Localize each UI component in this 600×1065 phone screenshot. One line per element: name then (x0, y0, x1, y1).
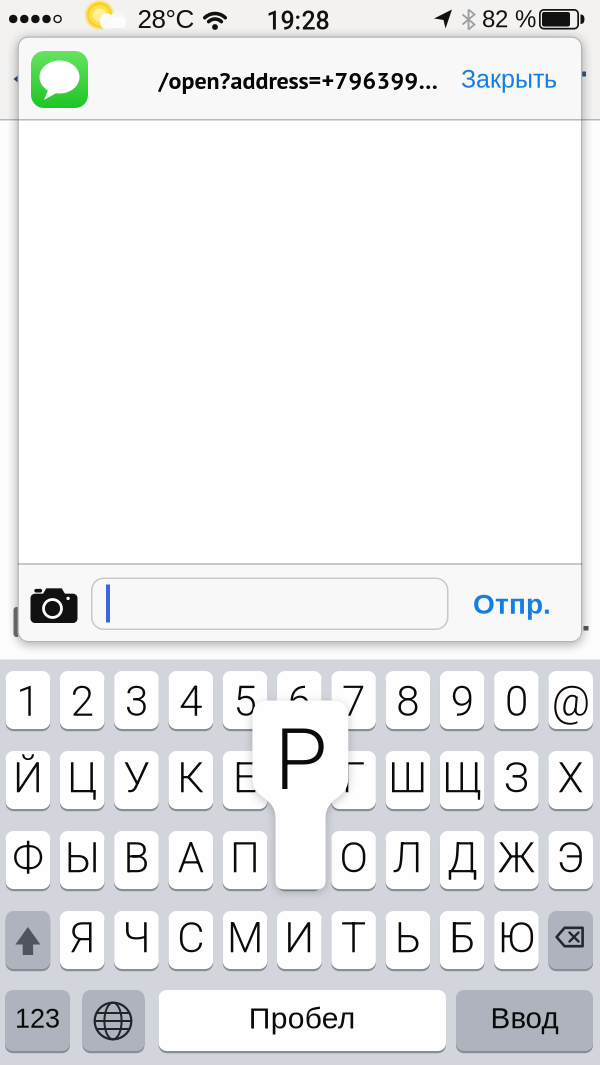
staticText: 19:28 (266, 6, 329, 36)
button[interactable]: П (223, 831, 267, 889)
button[interactable]: З (494, 751, 539, 809)
staticText: /open?address=+796399… (158, 64, 437, 96)
button[interactable]: 2 (60, 671, 104, 729)
button[interactable]: С (168, 911, 213, 969)
staticText: Ш (388, 753, 427, 803)
button[interactable]: А (168, 831, 213, 889)
staticText: К (177, 753, 204, 803)
button[interactable]: Х (548, 751, 593, 809)
staticText: 7 (342, 677, 365, 726)
staticText: 1 (16, 677, 39, 726)
button[interactable]: О (331, 831, 376, 889)
staticText: Отпр. (473, 588, 551, 620)
staticText: @ (552, 677, 590, 726)
button[interactable]: Ш (386, 751, 430, 809)
staticText: Закрыть (461, 65, 557, 93)
button[interactable]: Е (223, 751, 267, 809)
staticText: Д (447, 833, 477, 883)
button[interactable]: Й (6, 751, 50, 809)
button[interactable]: Л (386, 831, 430, 889)
staticText: Ц (67, 753, 97, 803)
button[interactable]: Г (331, 751, 376, 809)
button[interactable]: Текст сообщения (91, 577, 448, 630)
button[interactable]: У (114, 751, 159, 809)
staticText: Б (449, 913, 475, 963)
button[interactable]: Ы (60, 831, 104, 889)
staticText: 0 (505, 677, 528, 726)
button[interactable]: 1 (6, 671, 50, 729)
button[interactable]: Ь (386, 911, 430, 969)
staticText: 5 (233, 677, 256, 726)
button[interactable]: 3 (114, 671, 159, 729)
button[interactable]: 123 (5, 990, 70, 1051)
button[interactable]: Щ (440, 751, 484, 809)
button[interactable]: Сменить клавиатуру (82, 990, 144, 1051)
button[interactable]: Ж (494, 831, 539, 889)
button[interactable]: Я (60, 911, 104, 969)
button[interactable]: Ч (114, 911, 159, 969)
button[interactable]: Отпр. (452, 584, 572, 624)
button[interactable]: Э (548, 831, 593, 889)
button[interactable]: Б (440, 911, 484, 969)
button[interactable]: 0 (494, 671, 539, 729)
staticText: Г (342, 753, 365, 803)
button[interactable]: 5 (223, 671, 267, 729)
button[interactable]: 7 (331, 671, 376, 729)
button[interactable]: Т (331, 911, 376, 969)
button[interactable]: И (277, 911, 322, 969)
staticText: А (178, 833, 204, 883)
staticText: Н (284, 753, 314, 803)
staticText: Ввод (490, 1001, 558, 1034)
staticText: М (227, 913, 263, 963)
staticText: О (340, 833, 368, 883)
staticText: Ф (12, 833, 43, 883)
staticText: 123 (15, 1003, 60, 1034)
staticText: С (177, 913, 204, 963)
button[interactable]: Shift (6, 911, 50, 969)
button[interactable]: Ц (60, 751, 104, 809)
button[interactable]: К (168, 751, 213, 809)
button[interactable]: Ввод (456, 990, 593, 1051)
staticText: Х (558, 753, 584, 803)
staticText: Л (393, 833, 423, 883)
button[interactable]: Н (277, 751, 322, 809)
staticText: Пробел (249, 1001, 356, 1035)
button[interactable]: Ф (6, 831, 50, 889)
staticText: Ч (122, 913, 150, 963)
button[interactable]: 4 (168, 671, 213, 729)
button[interactable]: В (114, 831, 159, 889)
staticText: Э (557, 833, 585, 883)
button[interactable]: 8 (386, 671, 430, 729)
staticText: 8 (396, 677, 419, 726)
staticText: П (230, 833, 260, 883)
button[interactable]: Удалить (548, 911, 593, 969)
staticText: Е (233, 753, 257, 803)
button[interactable]: 6 (277, 671, 322, 729)
button[interactable]: Камера (27, 584, 80, 627)
staticText: В (123, 833, 149, 883)
staticText: 6 (288, 677, 311, 726)
button[interactable]: @ (548, 671, 593, 729)
button[interactable]: 9 (440, 671, 484, 729)
staticText: Ы (65, 833, 100, 883)
button[interactable]: Д (440, 831, 484, 889)
button[interactable]: Закрыть (444, 59, 574, 99)
staticText: У (123, 753, 149, 803)
staticText: Т (341, 913, 366, 963)
staticText: 2 (71, 677, 94, 726)
staticText: Р (274, 710, 327, 810)
staticText: З (504, 753, 529, 803)
staticText: 82 % (482, 6, 536, 32)
staticText: Ь (395, 913, 421, 963)
staticText: 4 (179, 677, 202, 726)
staticText: И (284, 913, 314, 963)
staticText: Я (69, 913, 95, 963)
button[interactable]: Ю (494, 911, 539, 969)
staticText: 3 (125, 677, 148, 726)
staticText: Й (13, 753, 43, 803)
staticText: Щ (442, 753, 482, 803)
button[interactable]: М (223, 911, 267, 969)
button[interactable]: Пробел (159, 990, 446, 1051)
